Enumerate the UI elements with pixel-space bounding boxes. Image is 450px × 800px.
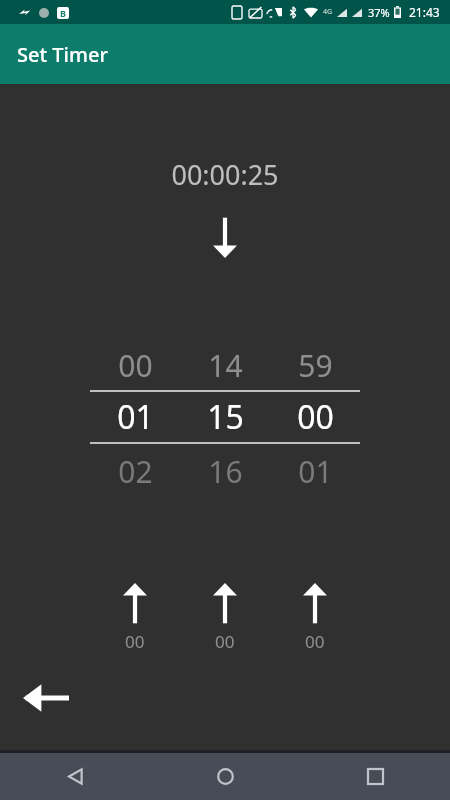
button[interactable]: Decrease <box>198 210 252 264</box>
button[interactable]: 00 <box>90 342 180 388</box>
staticText: 00:00:25 <box>171 156 279 193</box>
button[interactable]: Back <box>0 753 150 800</box>
staticText: 02 <box>118 451 153 492</box>
staticText: 15 <box>207 395 244 439</box>
staticText: 00 <box>125 630 145 653</box>
staticText: 21:43 <box>409 4 440 20</box>
button[interactable]: Home <box>150 753 300 800</box>
staticText: 14 <box>208 345 243 386</box>
button[interactable]: 02 <box>90 448 180 494</box>
staticText: 4G <box>323 7 333 17</box>
staticText: 59 <box>298 345 333 386</box>
staticText: 00 <box>118 345 153 386</box>
staticText: 00 <box>297 395 334 439</box>
button[interactable]: 15 <box>180 394 270 440</box>
button[interactable]: Increase seconds <box>288 582 342 653</box>
staticText: 01 <box>117 395 154 439</box>
staticText: B <box>60 7 66 19</box>
button[interactable]: 16 <box>180 448 270 494</box>
button[interactable]: 14 <box>180 342 270 388</box>
staticText: 16 <box>208 451 243 492</box>
button[interactable]: 01 <box>90 394 180 440</box>
button[interactable]: Back <box>10 670 82 726</box>
button[interactable]: 59 <box>270 342 360 388</box>
button[interactable]: Recents <box>300 753 450 800</box>
button[interactable]: Increase minutes <box>198 582 252 653</box>
button[interactable]: 01 <box>270 448 360 494</box>
staticText: 00 <box>215 630 235 653</box>
staticText: 37% <box>368 5 390 20</box>
button[interactable]: 00 <box>270 394 360 440</box>
staticText: 01 <box>298 451 333 492</box>
staticText: Set Timer <box>17 41 108 68</box>
staticText: 00 <box>305 630 325 653</box>
button[interactable]: Increase hours <box>108 582 162 653</box>
